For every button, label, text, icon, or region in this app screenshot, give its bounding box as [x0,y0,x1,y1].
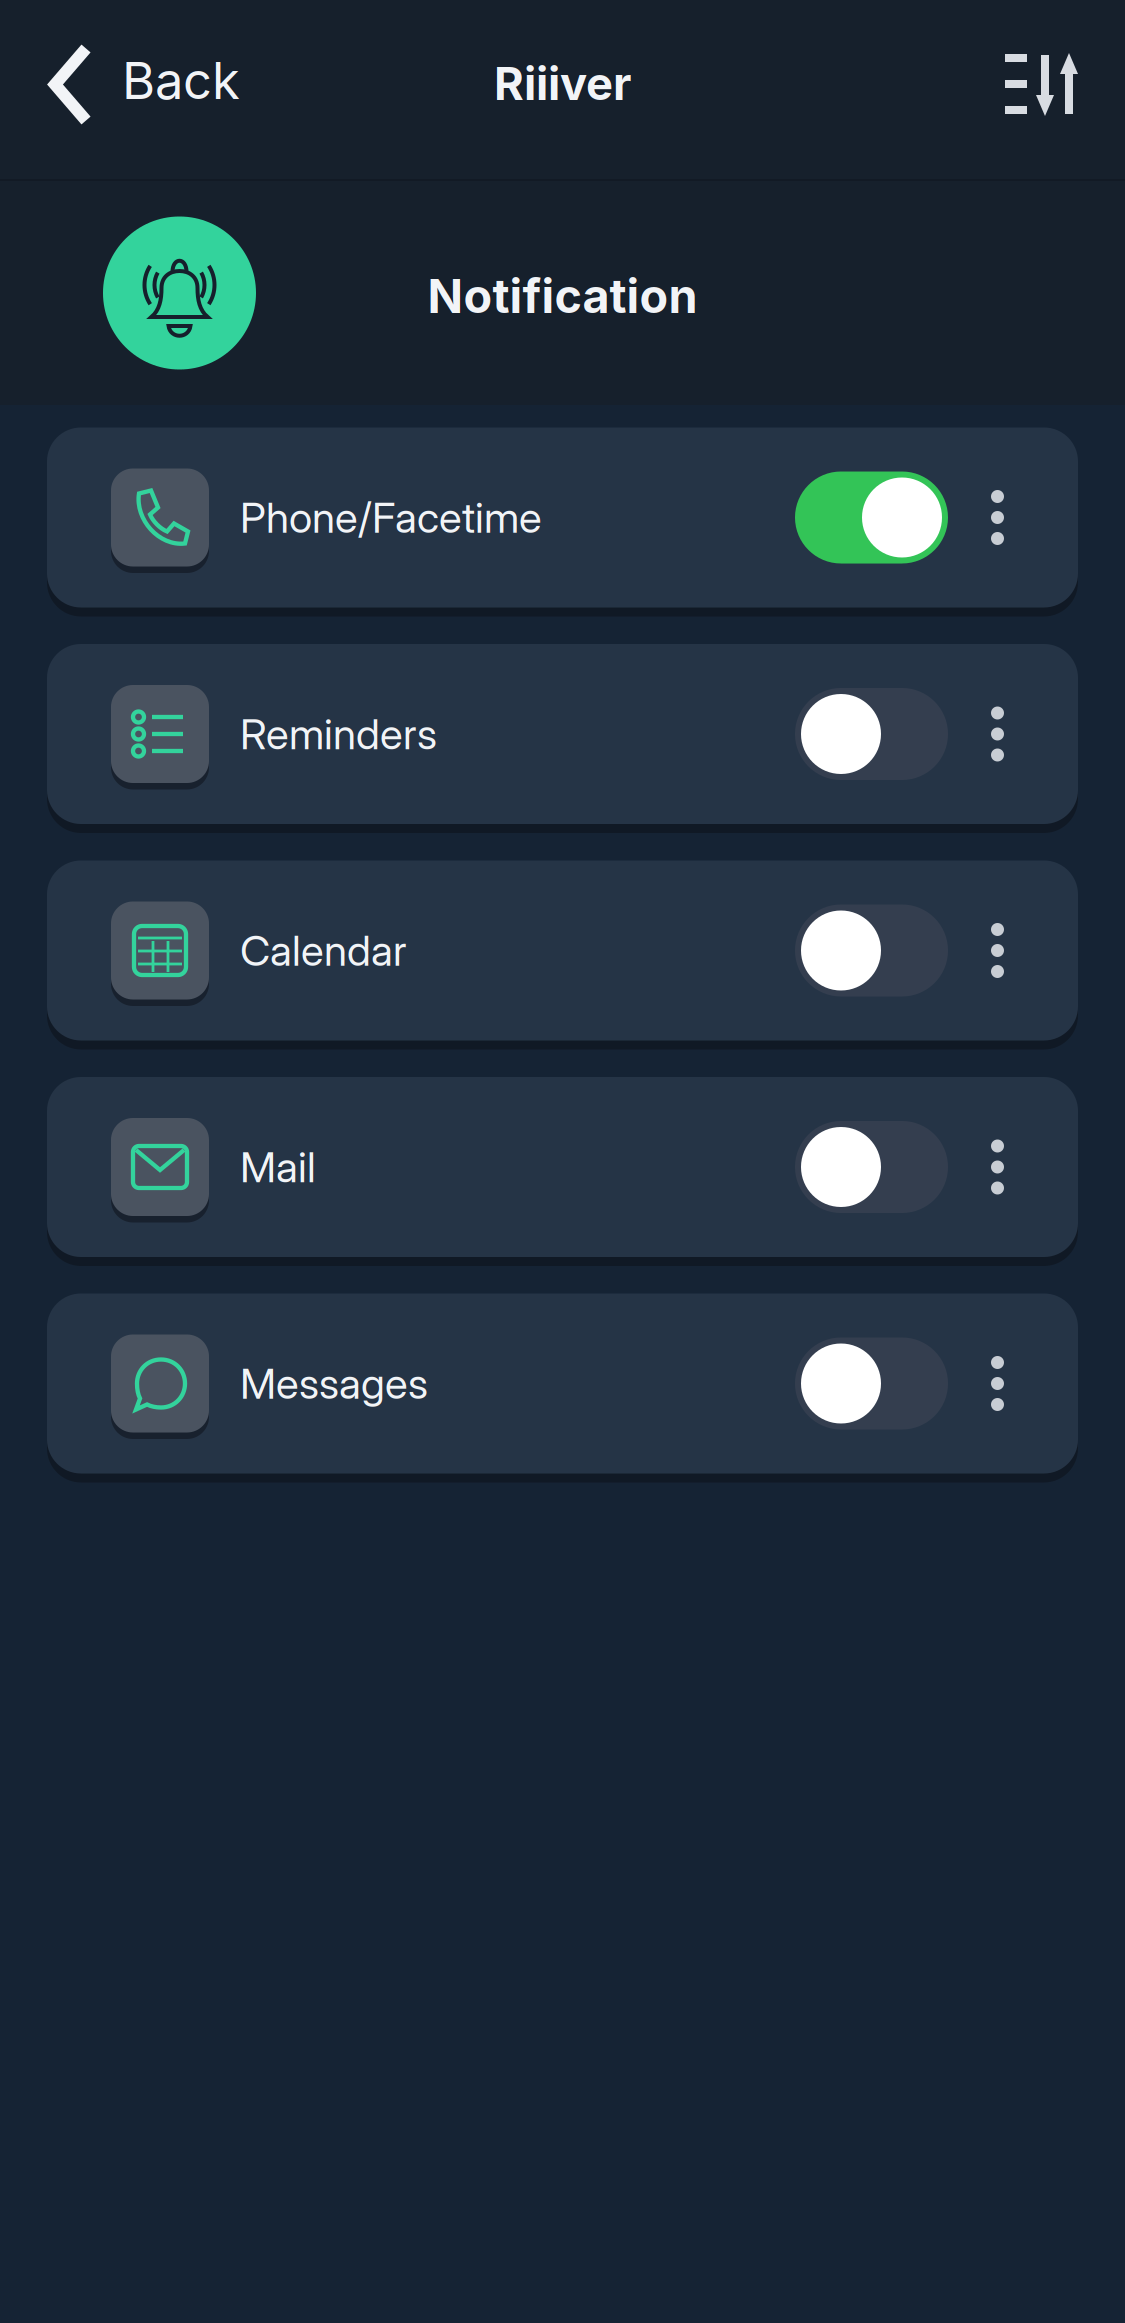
button[interactable]: Reminders [0,639,1125,828]
button[interactable]: Back [0,24,270,154]
button[interactable]: Phone/Facetime [0,423,1125,612]
staticText: Calendar [240,925,407,976]
staticText: Riiiver [494,56,631,111]
button[interactable]: More options [948,860,1078,1040]
staticText: Reminders [240,709,437,759]
button[interactable]: Messages [0,1289,1125,1478]
button[interactable]: Calendar notifications [795,904,948,996]
staticText: Messages [240,1358,428,1409]
staticText: Mail [240,1142,316,1192]
button[interactable]: More options [948,644,1078,824]
button[interactable]: More options [948,427,1078,607]
button[interactable]: Reminders notifications [795,688,948,780]
staticText: Phone/Facetime [240,492,542,543]
button[interactable]: Sort [962,24,1125,154]
button[interactable]: Mail notifications [795,1121,948,1213]
button[interactable]: Messages notifications [795,1337,948,1429]
staticText: Back [122,50,240,111]
staticText: Notification [427,268,697,324]
button[interactable]: Phone/Facetime notifications [795,471,948,563]
button[interactable]: More options [948,1077,1078,1257]
button[interactable]: Calendar [0,856,1125,1045]
button[interactable]: Mail [0,1072,1125,1261]
button[interactable]: More options [948,1293,1078,1473]
